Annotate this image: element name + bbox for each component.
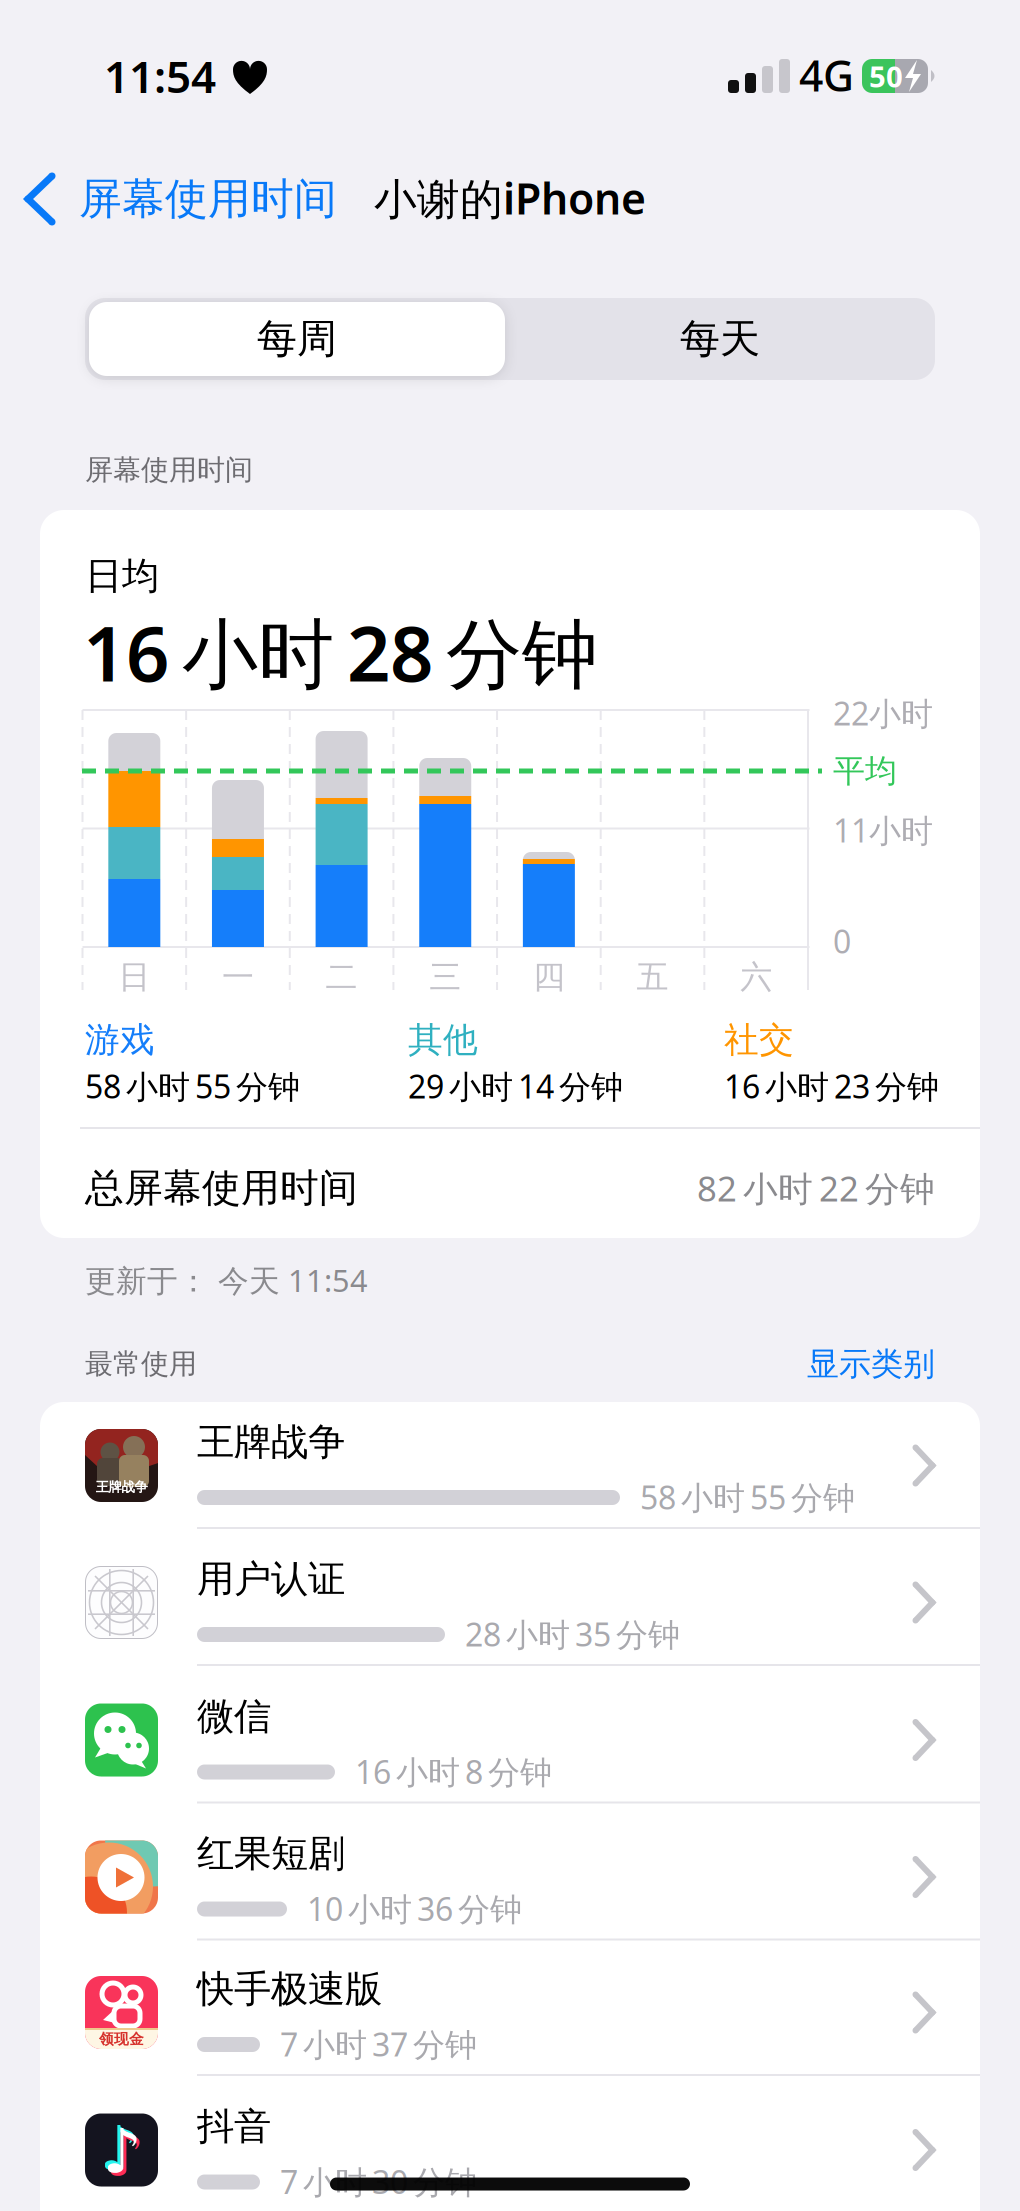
staticText: 11小时 xyxy=(833,809,933,851)
staticText: 王牌战争 xyxy=(197,1419,345,1465)
staticText: 用户认证 xyxy=(197,1556,345,1602)
staticText: ♪ xyxy=(99,2114,138,2183)
staticText: 10 小时 36 分钟 xyxy=(307,1887,522,1930)
staticText: 屏幕使用时间 xyxy=(79,173,337,225)
staticText: 日 xyxy=(118,957,150,997)
staticText: 7 小时 37 分钟 xyxy=(280,2023,477,2065)
staticText: 11:54 xyxy=(104,47,216,105)
button[interactable]: 王牌战争 xyxy=(40,1405,980,1526)
staticText: 其他 xyxy=(408,1019,478,1061)
staticText: 抖音 xyxy=(197,2104,271,2149)
staticText: 16 小时 8 分钟 xyxy=(355,1750,552,1793)
button[interactable]: 屏幕使用时间 xyxy=(24,154,444,244)
staticText: 29 小时 14 分钟 xyxy=(408,1065,623,1107)
staticText: 屏幕使用时间 xyxy=(85,453,253,487)
staticText: 16 小时 28 分钟 xyxy=(83,601,598,702)
staticText: 显示类别 xyxy=(807,1344,935,1384)
staticText: 最常使用 xyxy=(85,1347,197,1381)
staticText: 一 xyxy=(222,957,254,997)
staticText: 28 小时 35 分钟 xyxy=(465,1613,680,1655)
staticText: 三 xyxy=(429,957,461,997)
staticText: 0 xyxy=(833,920,851,962)
staticText: ♪ xyxy=(102,2117,141,2186)
staticText: ♪ xyxy=(105,2120,144,2189)
staticText: 总屏幕使用时间 xyxy=(85,1164,358,1212)
button[interactable]: 抖音 xyxy=(40,2089,980,2210)
button[interactable]: 快手极速版 xyxy=(40,1952,980,2073)
staticText: 社交 xyxy=(724,1019,794,1061)
staticText: 红果短剧 xyxy=(197,1831,345,1876)
staticText: 微信 xyxy=(197,1694,271,1739)
staticText: 16 小时 23 分钟 xyxy=(724,1065,939,1107)
staticText: 小谢的iPhone xyxy=(374,170,646,226)
staticText: 平均 xyxy=(833,751,897,791)
staticText: 58 小时 55 分钟 xyxy=(640,1476,855,1518)
staticText: 二 xyxy=(326,957,358,997)
staticText: 王牌战争 xyxy=(95,1479,147,1495)
staticText: 领现金 xyxy=(99,2030,144,2048)
button[interactable]: 微信 xyxy=(40,1679,980,1800)
staticText: 五 xyxy=(636,957,668,997)
button[interactable]: 每天 xyxy=(510,302,930,376)
staticText: 58 小时 55 分钟 xyxy=(85,1065,300,1107)
button[interactable]: 显示类别 xyxy=(0,0,1020,2211)
button[interactable]: 红果短剧 xyxy=(40,1816,980,1937)
button[interactable]: 用户认证 xyxy=(40,1542,980,1663)
staticText: 每周 xyxy=(257,314,337,363)
staticText: 游戏 xyxy=(85,1019,155,1061)
staticText: 快手极速版 xyxy=(197,1966,382,2012)
staticText: 50 xyxy=(869,56,903,95)
staticText: 更新于： 今天 11:54 xyxy=(85,1260,368,1300)
staticText: 四 xyxy=(533,957,565,997)
staticText: 每天 xyxy=(680,314,760,363)
staticText: 4G xyxy=(799,47,854,103)
staticText: 22小时 xyxy=(833,692,933,734)
staticText: 六 xyxy=(740,957,772,997)
button[interactable] xyxy=(89,302,505,376)
staticText: 7 小时 30 分钟 xyxy=(280,2160,477,2203)
staticText: 82 小时 22 分钟 xyxy=(697,1165,935,1211)
staticText: 日均 xyxy=(85,553,159,599)
